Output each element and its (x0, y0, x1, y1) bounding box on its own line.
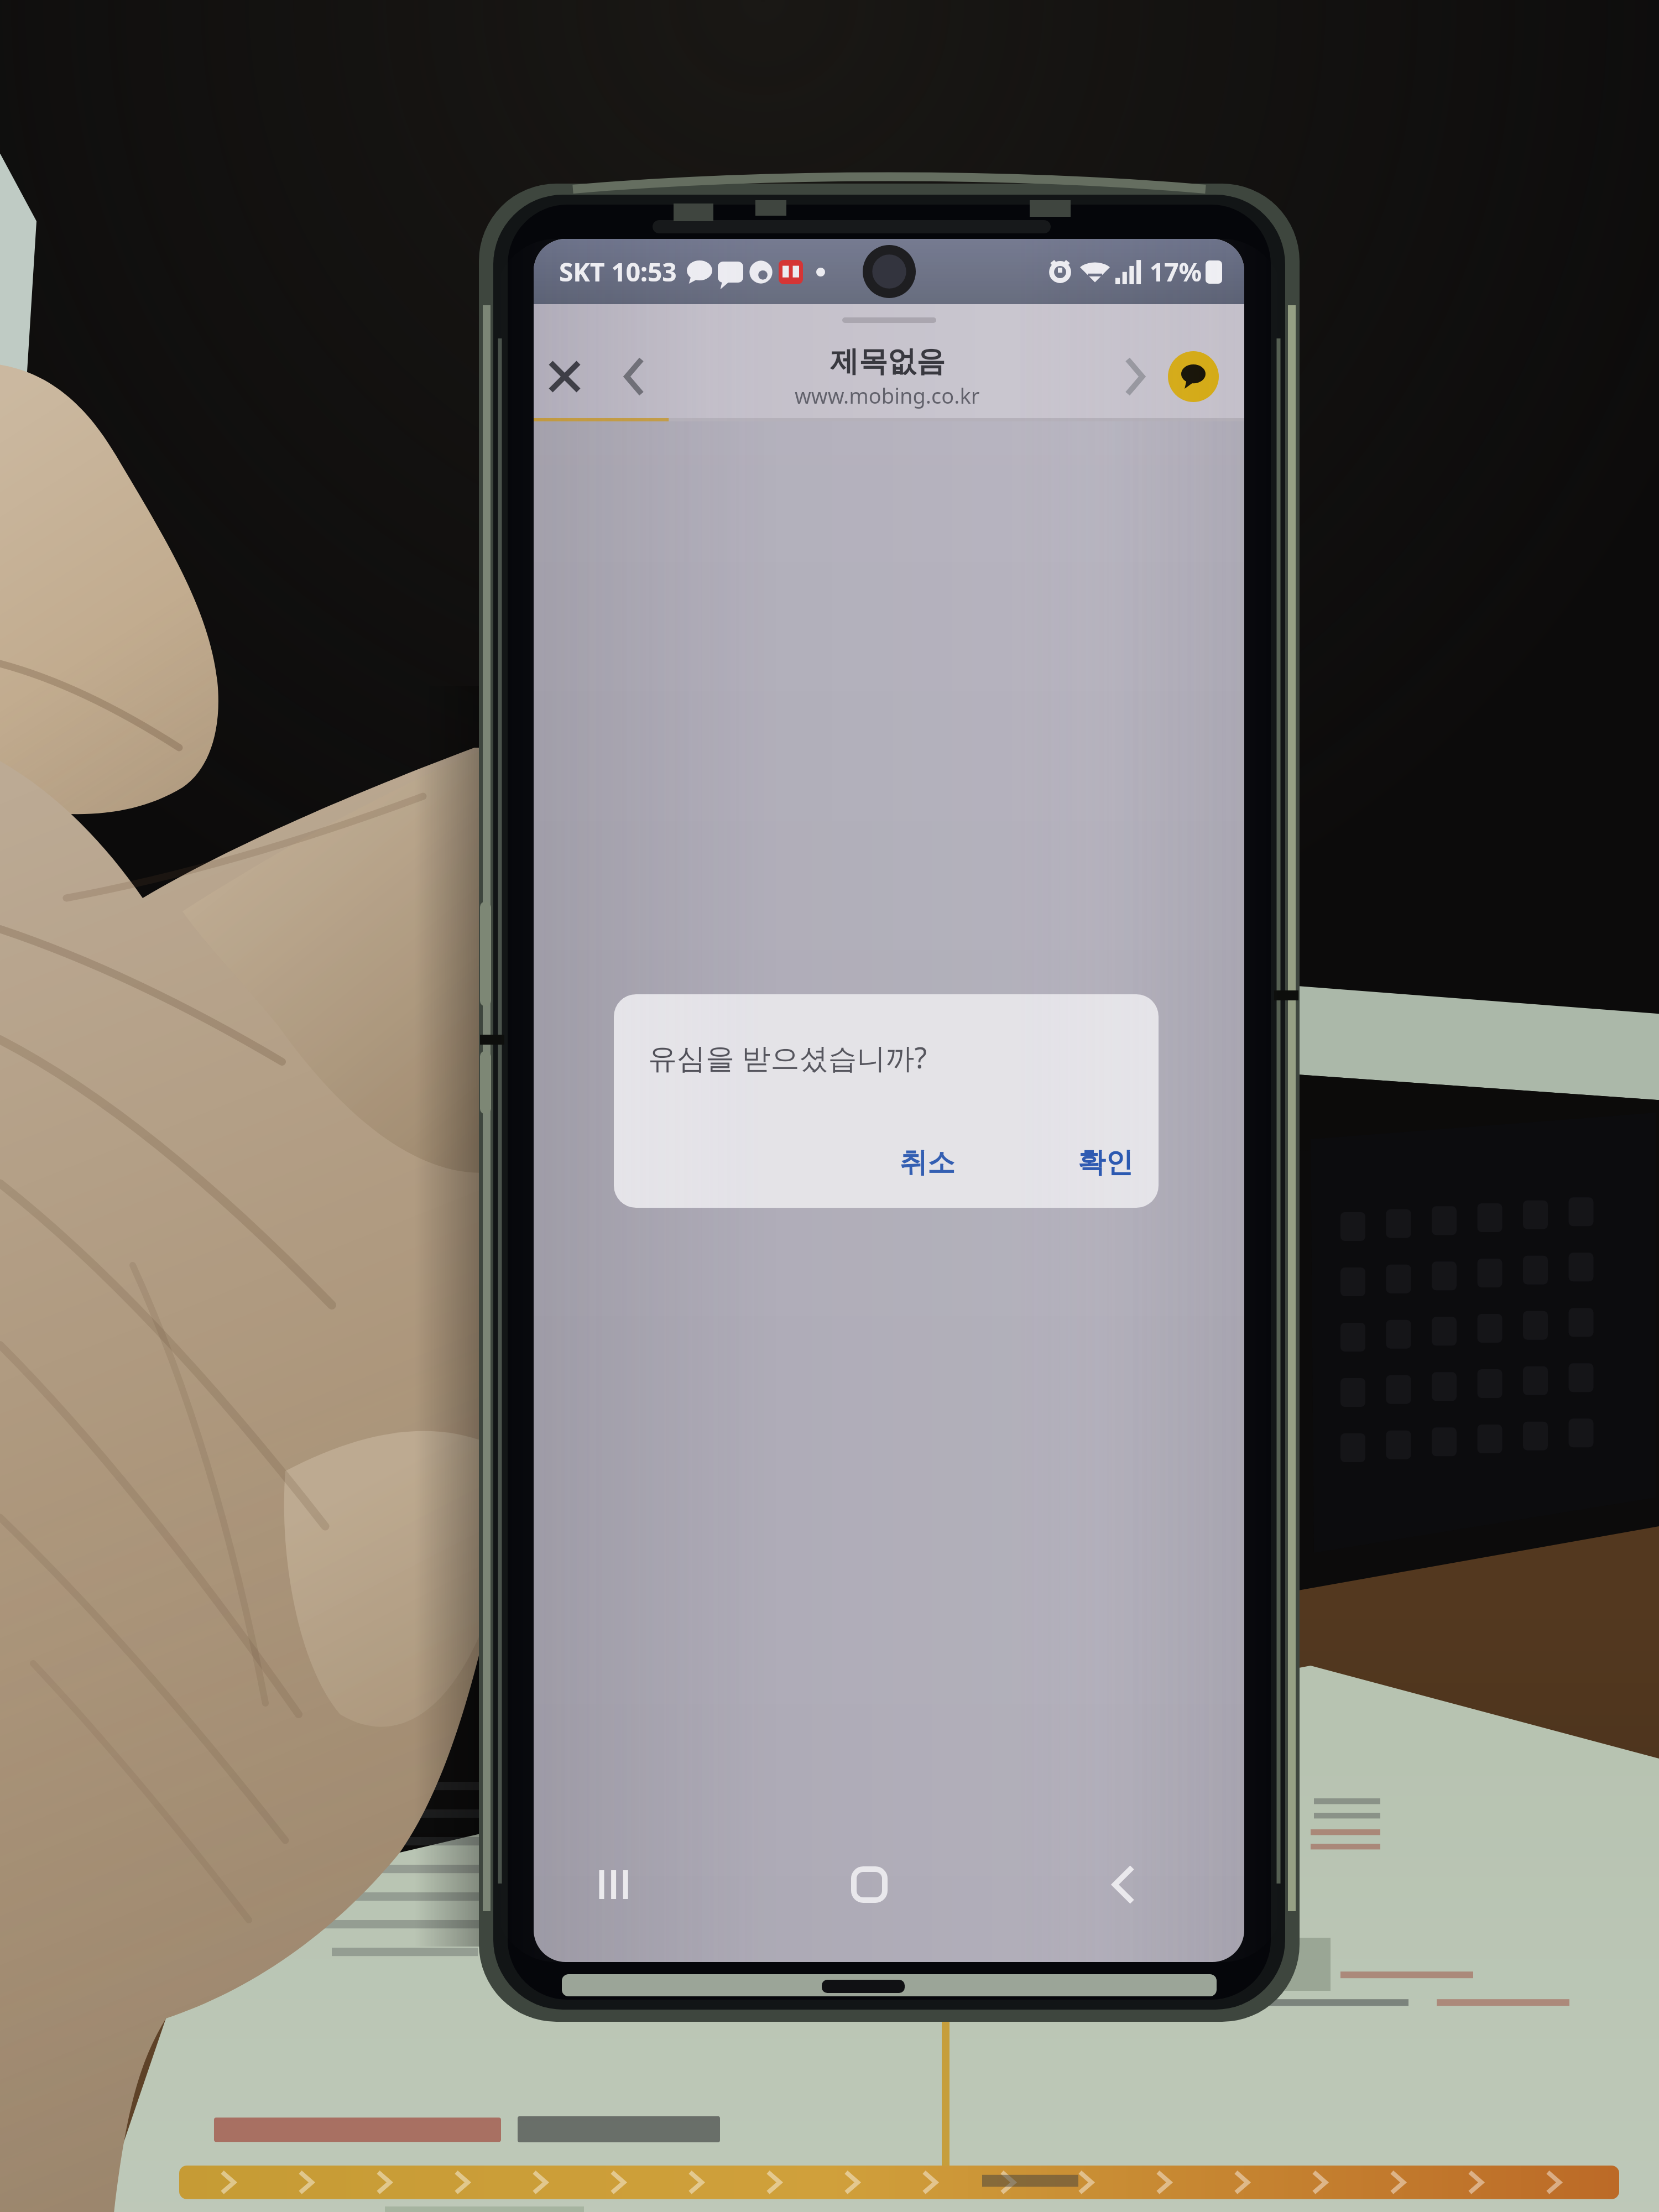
button[interactable]: Forward (1102, 332, 1168, 421)
staticText: 취소 (900, 1145, 955, 1180)
staticText: 제목없음 (830, 343, 945, 380)
staticText: 확인 (1078, 1145, 1133, 1180)
staticText: 17% (1150, 254, 1202, 289)
button[interactable]: Home (820, 1835, 919, 1934)
button[interactable]: Back (596, 332, 673, 421)
staticText: 유심을 받으셨습니까? (648, 1037, 927, 1077)
staticText: SKT 10:53 (559, 254, 677, 289)
button[interactable]: 확인 (1063, 1139, 1147, 1187)
staticText: www.mobing.co.kr (795, 381, 980, 410)
button[interactable]: Close (534, 332, 596, 421)
button[interactable]: Recent apps (565, 1835, 664, 1934)
button[interactable]: Back (1074, 1835, 1173, 1934)
button[interactable]: 취소 (885, 1139, 969, 1187)
button[interactable]: KakaoTalk (1168, 351, 1219, 402)
